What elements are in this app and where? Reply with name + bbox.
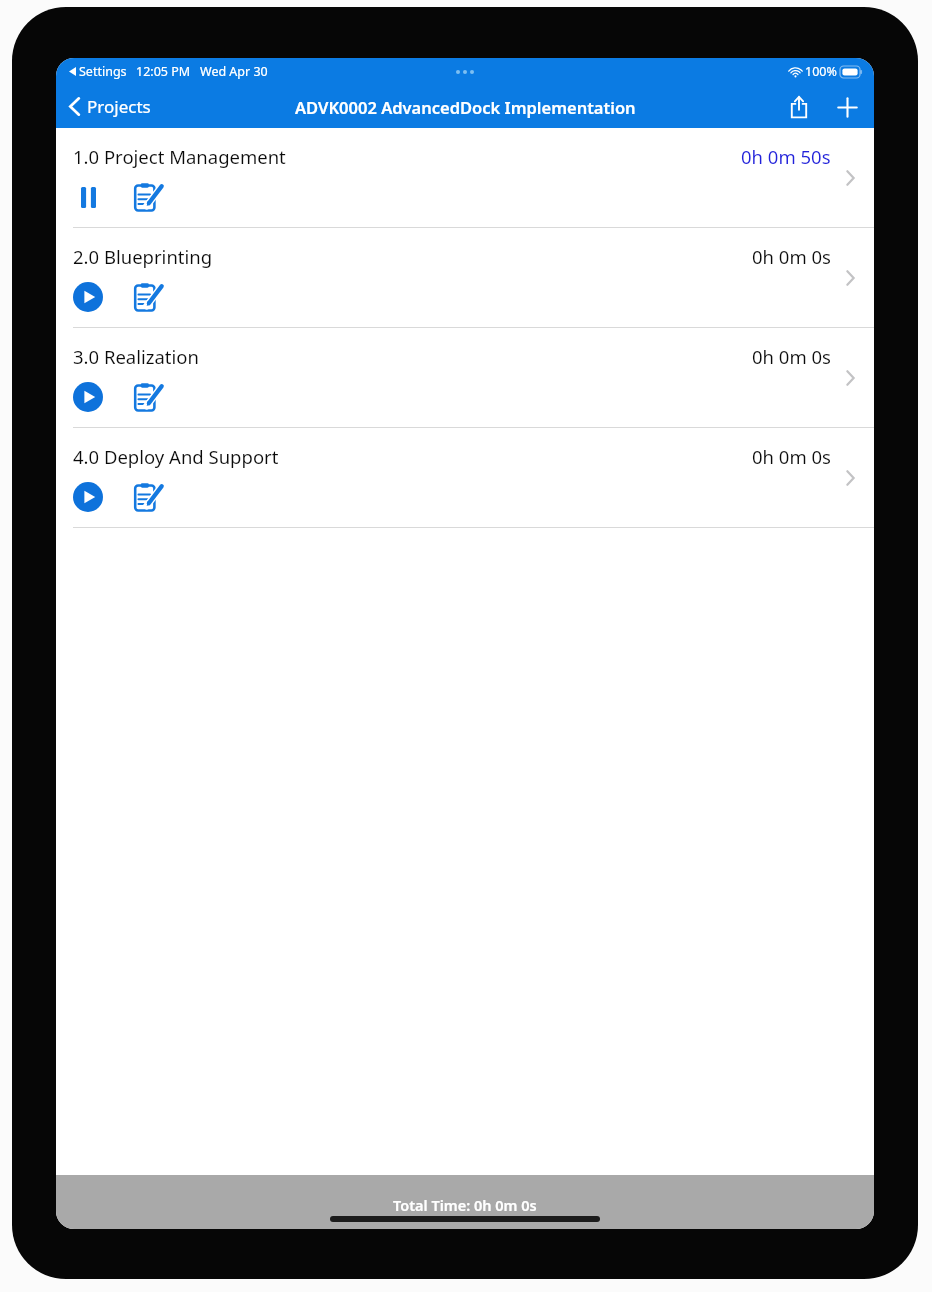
button[interactable]: Play <box>70 379 106 415</box>
staticText: ADVK0002 AdvancedDock Implementation <box>295 96 636 118</box>
staticText: 0h 0m 0s <box>752 244 831 269</box>
staticText: Total Time: 0h 0m 0s <box>393 1195 537 1215</box>
button[interactable]: Play <box>70 479 106 515</box>
staticText: 0h 0m 0s <box>752 344 831 369</box>
button[interactable]: 4.0 Deploy And Support <box>56 428 874 528</box>
staticText: Wed Apr 30 <box>200 63 268 80</box>
staticText: 1.0 Project Management <box>73 144 286 169</box>
staticText: Projects <box>87 95 151 118</box>
staticText: 4.0 Deploy And Support <box>73 444 279 469</box>
button[interactable]: 1.0 Project Management <box>56 128 874 228</box>
button[interactable]: Edit notes <box>128 177 168 217</box>
button[interactable]: Edit notes <box>128 477 168 517</box>
staticText: Settings <box>79 63 127 80</box>
staticText: 12:05 PM <box>136 63 191 80</box>
button[interactable]: 2.0 Blueprinting <box>56 228 874 328</box>
staticText: 0h 0m 0s <box>752 444 831 469</box>
button[interactable]: Play <box>70 279 106 315</box>
button[interactable]: Share <box>781 87 817 127</box>
button[interactable]: Projects <box>56 88 163 125</box>
staticText: 100% <box>805 63 837 80</box>
staticText: 0h 0m 50s <box>741 144 831 169</box>
button[interactable]: 3.0 Realization <box>56 328 874 428</box>
staticText: 3.0 Realization <box>73 344 199 369</box>
staticText: 2.0 Blueprinting <box>73 244 213 269</box>
button[interactable]: Edit notes <box>128 277 168 317</box>
button[interactable]: Add <box>828 88 867 127</box>
button[interactable]: Pause <box>70 179 106 215</box>
button[interactable]: Edit notes <box>128 377 168 417</box>
